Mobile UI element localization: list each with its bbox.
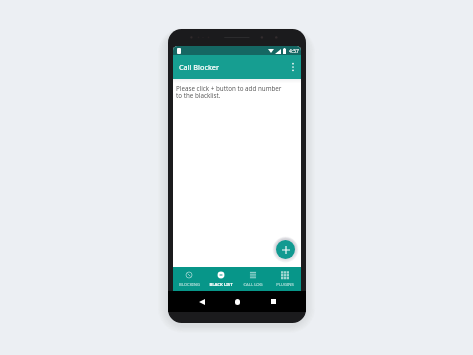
button[interactable]: BLACK LIST (205, 267, 237, 291)
button[interactable]: More options (286, 60, 300, 74)
staticText: BLOCKING (179, 282, 200, 288)
button[interactable]: Add number (276, 240, 295, 259)
staticText: 4:57 (289, 48, 299, 55)
staticText: Call Blocker (179, 62, 219, 72)
button[interactable]: Recents (267, 295, 280, 308)
button[interactable]: Back (195, 295, 208, 308)
staticText: Please click + button to add number to t… (176, 84, 284, 100)
staticText: BLACK LIST (209, 282, 233, 288)
button[interactable]: BLOCKING (173, 267, 205, 291)
button[interactable]: Home (231, 295, 244, 308)
staticText: CALL LOG (243, 282, 263, 288)
button[interactable]: CALL LOG (237, 267, 269, 291)
staticText: PLUGINS (276, 282, 294, 288)
button[interactable]: PLUGINS (269, 267, 301, 291)
